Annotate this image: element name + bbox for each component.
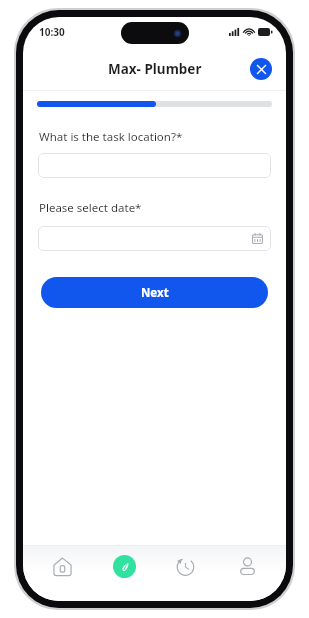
staticText: What is the task location?* xyxy=(39,129,270,145)
button[interactable] xyxy=(38,153,271,178)
button[interactable]: Close xyxy=(250,58,272,80)
button[interactable]: Profile xyxy=(224,545,270,587)
staticText: Next xyxy=(141,285,169,301)
button[interactable]: Pick date xyxy=(38,226,271,251)
other: Pick date xyxy=(252,233,263,244)
button[interactable]: Home xyxy=(39,545,85,587)
button[interactable]: Explore xyxy=(101,545,147,587)
staticText: 10:30 xyxy=(39,25,65,39)
staticText: Max- Plumber xyxy=(108,60,202,78)
staticText: Please select date* xyxy=(39,200,270,216)
button[interactable]: Next xyxy=(41,277,268,308)
button[interactable]: History xyxy=(162,545,208,587)
